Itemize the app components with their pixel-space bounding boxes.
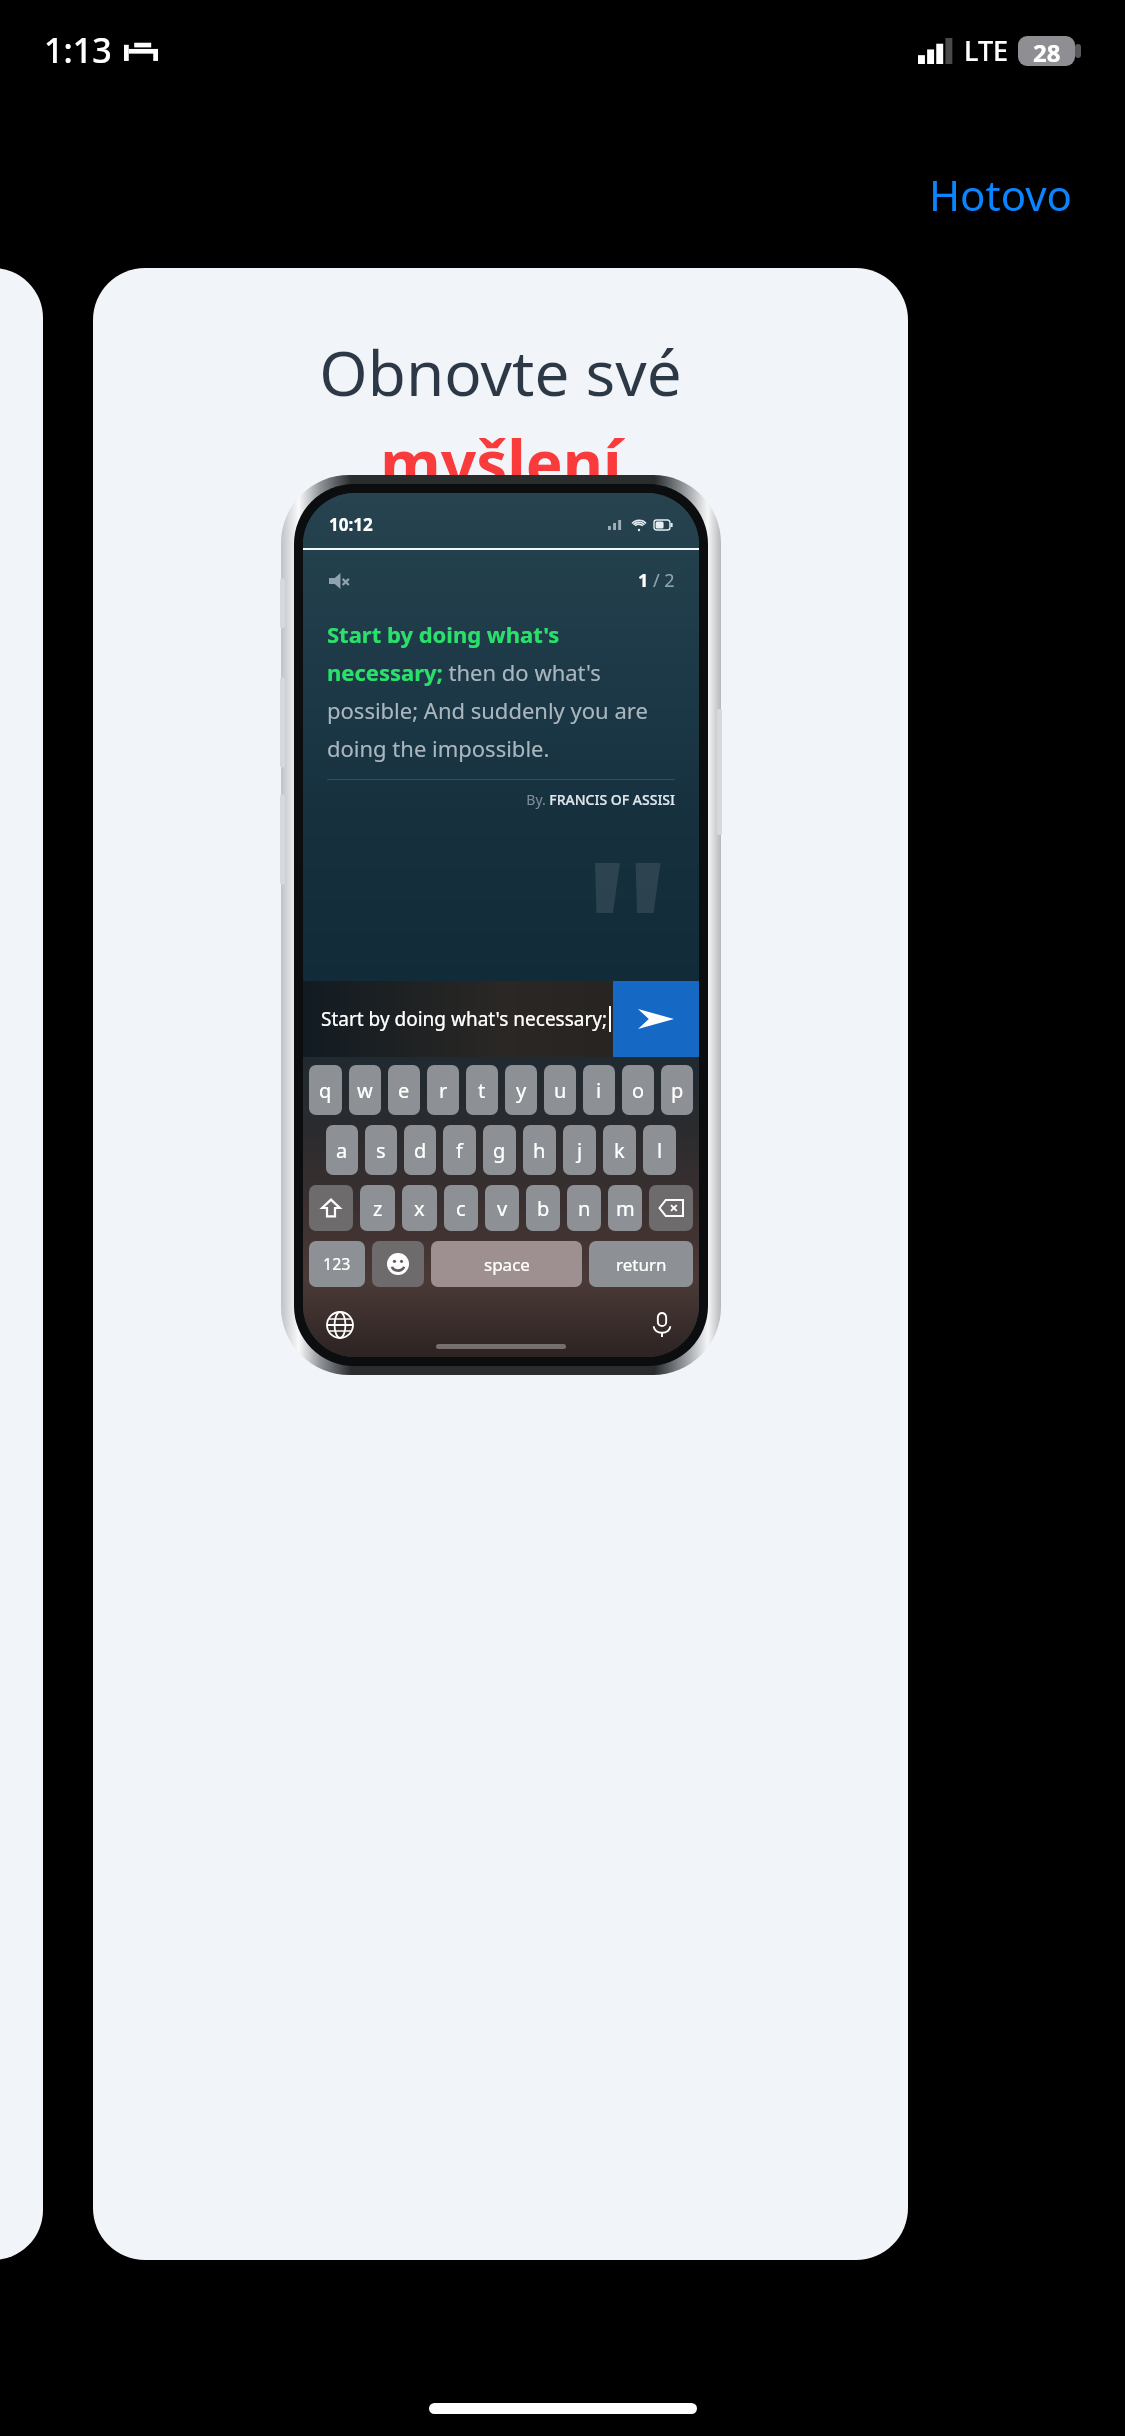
button[interactable]: a (326, 1125, 358, 1175)
staticText: o (632, 1077, 645, 1104)
button[interactable]: return (589, 1241, 693, 1287)
staticText: n (578, 1195, 591, 1222)
button[interactable]: s (365, 1125, 397, 1175)
button[interactable]: r (427, 1065, 459, 1115)
button[interactable]: q (309, 1065, 342, 1115)
staticText: space (484, 1253, 530, 1276)
button[interactable]: i (583, 1065, 615, 1115)
staticText: h (533, 1137, 546, 1164)
button[interactable]: e (388, 1065, 420, 1115)
staticText: a (336, 1137, 348, 1164)
button[interactable]: Emoji (372, 1241, 424, 1287)
button[interactable]: o (622, 1065, 654, 1115)
staticText: g (493, 1137, 506, 1164)
button[interactable]: Dictate (645, 1308, 679, 1342)
staticText: 1:13 (44, 27, 112, 73)
staticText: Start by doing what's necessary; (321, 1006, 608, 1032)
button[interactable]: w (349, 1065, 381, 1115)
staticText: 123 (323, 1253, 351, 1275)
button[interactable]: b (526, 1185, 560, 1231)
button[interactable]: p (661, 1065, 693, 1115)
staticText: t (478, 1077, 486, 1104)
button[interactable]: v (485, 1185, 519, 1231)
staticText: q (319, 1077, 332, 1104)
staticText: i (596, 1077, 602, 1104)
staticText: myšlení (380, 420, 622, 504)
button[interactable]: f (443, 1125, 476, 1175)
staticText: d (414, 1137, 427, 1164)
staticText: j (577, 1137, 583, 1164)
button[interactable]: g (483, 1125, 516, 1175)
button[interactable]: Change keyboard (323, 1308, 357, 1342)
staticText: Start by doing what's necessary; then do… (327, 619, 675, 763)
button[interactable]: m (608, 1185, 642, 1231)
staticText: x (414, 1195, 425, 1222)
staticText: Obnovte své (319, 330, 682, 414)
button[interactable]: l (643, 1125, 676, 1175)
staticText: b (537, 1195, 550, 1222)
button[interactable]: Start by doing what's necessary; (303, 981, 613, 1057)
staticText: LTE (964, 32, 1009, 69)
button[interactable]: Send (613, 981, 699, 1057)
staticText: By. FRANCIS OF ASSISI (303, 790, 675, 809)
staticText: p (671, 1077, 684, 1104)
button[interactable]: j (563, 1125, 596, 1175)
button[interactable]: space (431, 1241, 582, 1287)
staticText: return (616, 1253, 667, 1276)
button[interactable]: n (567, 1185, 601, 1231)
staticText: z (373, 1195, 383, 1222)
staticText: l (657, 1137, 663, 1164)
button[interactable]: c (444, 1185, 478, 1231)
button[interactable]: h (523, 1125, 556, 1175)
staticText: c (456, 1195, 466, 1222)
button[interactable]: d (404, 1125, 436, 1175)
button[interactable]: x (402, 1185, 437, 1231)
button[interactable]: Shift (309, 1185, 353, 1231)
staticText: 1 / 2 (638, 568, 675, 593)
staticText: 10:12 (329, 513, 373, 536)
button[interactable]: k (603, 1125, 636, 1175)
button[interactable]: Hotovo (917, 160, 1085, 229)
button[interactable]: t (466, 1065, 498, 1115)
staticText: s (376, 1137, 386, 1164)
button[interactable]: 123 (309, 1241, 365, 1287)
button[interactable]: y (505, 1065, 537, 1115)
button[interactable]: u (544, 1065, 576, 1115)
staticText: f (456, 1137, 463, 1164)
staticText: v (497, 1195, 508, 1222)
staticText: w (357, 1077, 373, 1104)
button[interactable]: Mute (327, 571, 353, 591)
staticText: r (439, 1077, 448, 1104)
button[interactable]: z (360, 1185, 395, 1231)
staticText: k (614, 1137, 625, 1164)
staticText: y (516, 1077, 527, 1104)
button[interactable]: Backspace (649, 1185, 693, 1231)
staticText: u (554, 1077, 567, 1104)
staticText: m (616, 1195, 635, 1222)
staticText: e (398, 1077, 410, 1104)
staticText: Hotovo (929, 166, 1073, 223)
staticText: 28 (1033, 36, 1061, 66)
